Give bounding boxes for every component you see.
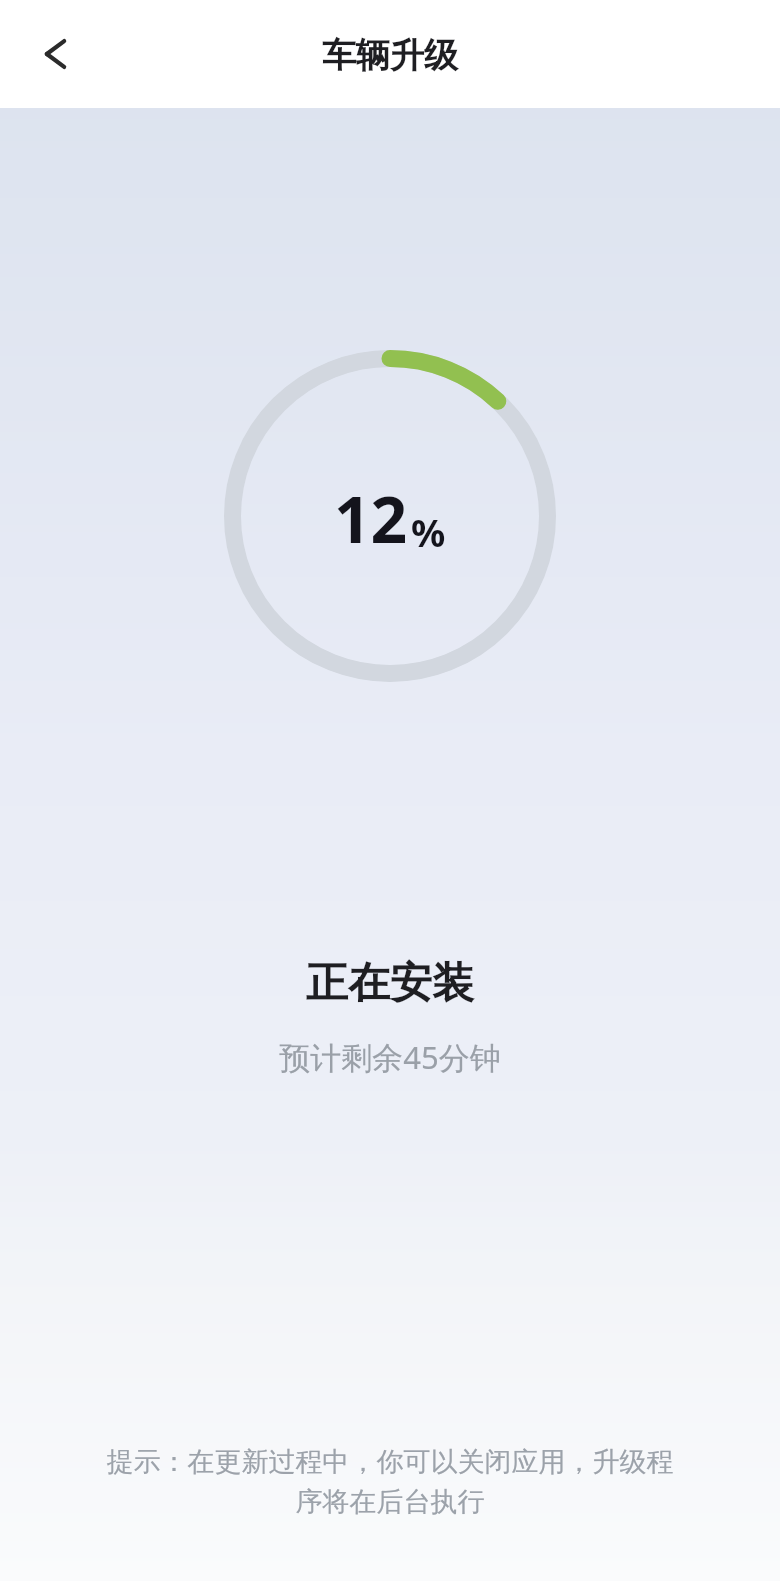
staticText: 12 (334, 475, 408, 562)
button[interactable]: Back (22, 20, 90, 88)
staticText: 正在安装 (0, 957, 780, 1010)
staticText: 车辆升级 (322, 34, 458, 77)
staticText: % (411, 506, 446, 558)
staticText: 预计剩余45分钟 (0, 1036, 780, 1078)
staticText: 提示：在更新过程中，你可以关闭应用，升级程 序将在后台执行 (70, 1445, 710, 1519)
